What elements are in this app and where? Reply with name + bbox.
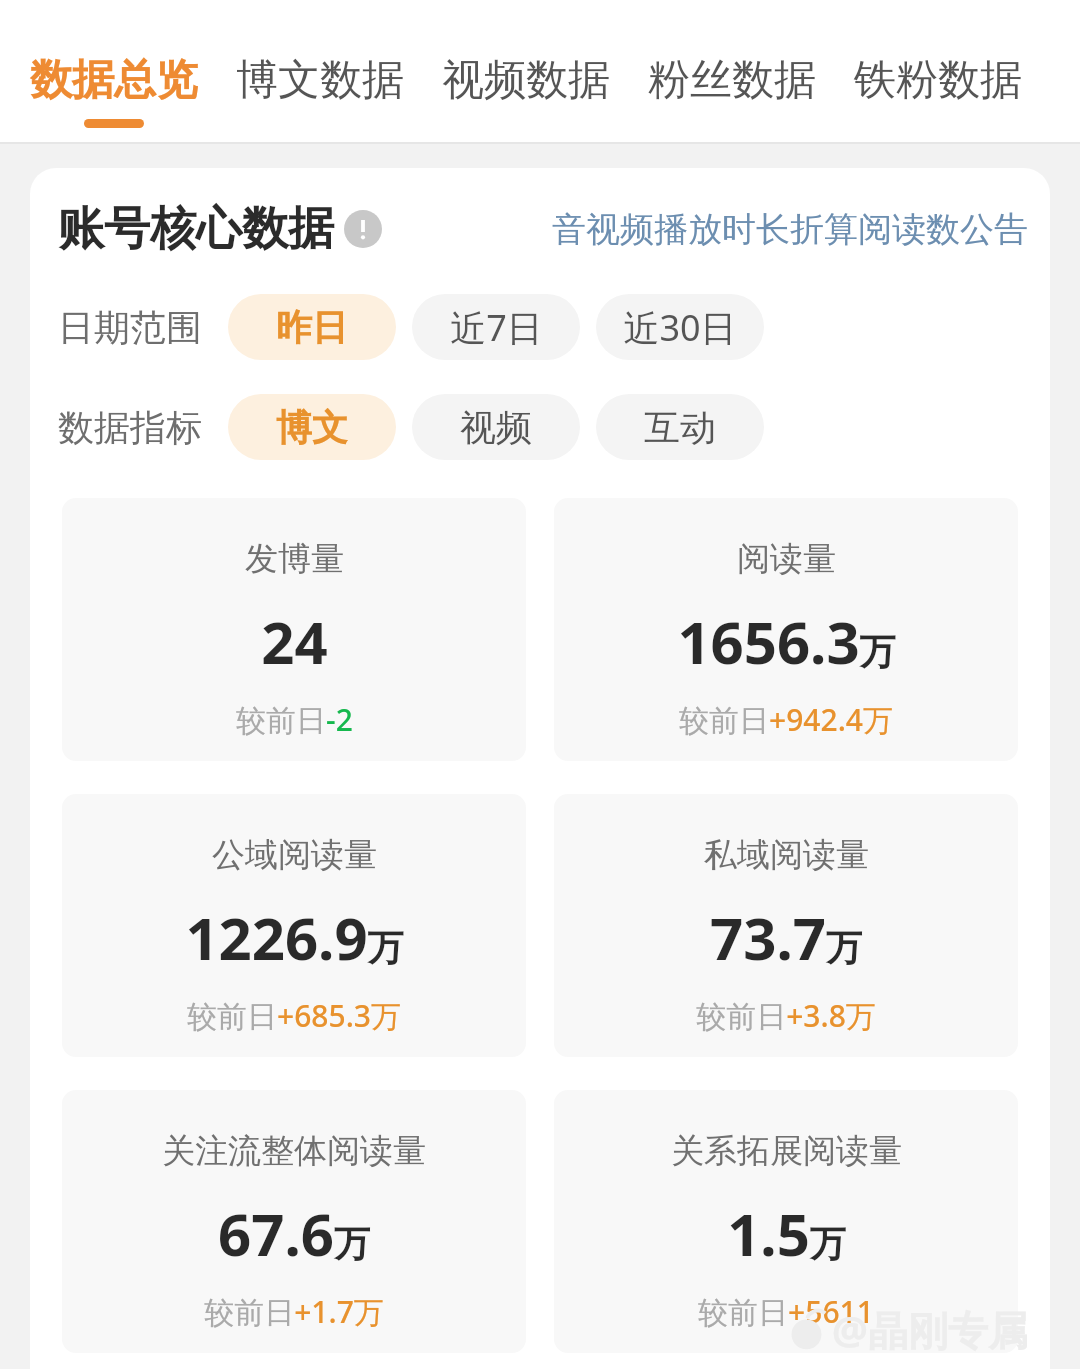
staticText: 铁粉数据 bbox=[854, 54, 1022, 107]
staticText: 博文 bbox=[276, 405, 348, 450]
staticText: 近7日 bbox=[450, 303, 543, 352]
button[interactable]: 昨日 bbox=[228, 294, 396, 360]
staticText: 较前日-2 bbox=[236, 699, 353, 740]
staticText: 24 bbox=[261, 602, 328, 681]
staticText: 私域阅读量 bbox=[704, 834, 869, 876]
button[interactable]: 发博量 bbox=[62, 498, 526, 761]
button[interactable]: 私域阅读量 bbox=[554, 794, 1018, 1057]
button[interactable]: 音视频播放时长折算阅读数公告 bbox=[552, 208, 1028, 251]
staticText: 数据总览 bbox=[30, 54, 198, 107]
button[interactable]: 视频 bbox=[412, 394, 580, 460]
button[interactable]: 博文数据 bbox=[236, 0, 404, 136]
staticText: 视频数据 bbox=[442, 54, 610, 107]
button[interactable]: 近30日 bbox=[596, 294, 764, 360]
button[interactable]: 近7日 bbox=[412, 294, 580, 360]
button[interactable]: 数据总览 bbox=[30, 0, 198, 136]
staticText: 日期范围 bbox=[58, 305, 202, 350]
button[interactable]: 铁粉数据 bbox=[854, 0, 1022, 136]
staticText: 较前日+3.8万 bbox=[696, 995, 876, 1036]
staticText: 关系拓展阅读量 bbox=[671, 1130, 902, 1172]
button[interactable]: 公域阅读量 bbox=[62, 794, 526, 1057]
staticText: 67.6万 bbox=[218, 1194, 370, 1273]
button[interactable]: 互动 bbox=[596, 394, 764, 460]
staticText: @晶刚专属 bbox=[832, 1302, 1028, 1357]
staticText: 视频 bbox=[460, 405, 532, 450]
button[interactable]: 关注流整体阅读量 bbox=[62, 1090, 526, 1353]
staticText: 1656.3万 bbox=[677, 602, 896, 681]
staticText: 73.7万 bbox=[710, 898, 862, 977]
staticText: 粉丝数据 bbox=[648, 54, 816, 107]
staticText: 数据指标 bbox=[58, 405, 202, 450]
button[interactable]: 阅读量 bbox=[554, 498, 1018, 761]
staticText: 1226.9万 bbox=[185, 898, 404, 977]
staticText: 1.5万 bbox=[727, 1194, 846, 1273]
staticText: 较前日+5611 bbox=[698, 1291, 874, 1332]
staticText: 近30日 bbox=[623, 303, 737, 352]
staticText: 账号核心数据 bbox=[58, 200, 334, 258]
staticText: 较前日+942.4万 bbox=[679, 699, 893, 740]
button[interactable]: 视频数据 bbox=[442, 0, 610, 136]
staticText: 公域阅读量 bbox=[212, 834, 377, 876]
staticText: 较前日+1.7万 bbox=[204, 1291, 384, 1332]
button[interactable]: 博文 bbox=[228, 394, 396, 460]
button[interactable]: 粉丝数据 bbox=[648, 0, 816, 136]
staticText: 发博量 bbox=[245, 538, 344, 580]
staticText: 互动 bbox=[644, 405, 716, 450]
staticText: 关注流整体阅读量 bbox=[162, 1130, 426, 1172]
button[interactable]: 关系拓展阅读量 bbox=[554, 1090, 1018, 1353]
staticText: 博文数据 bbox=[236, 54, 404, 107]
button[interactable]: 说明 bbox=[344, 210, 382, 248]
staticText: 音视频播放时长折算阅读数公告 bbox=[552, 208, 1028, 251]
staticText: 昨日 bbox=[276, 305, 348, 350]
staticText: 较前日+685.3万 bbox=[187, 995, 401, 1036]
staticText: 阅读量 bbox=[737, 538, 836, 580]
